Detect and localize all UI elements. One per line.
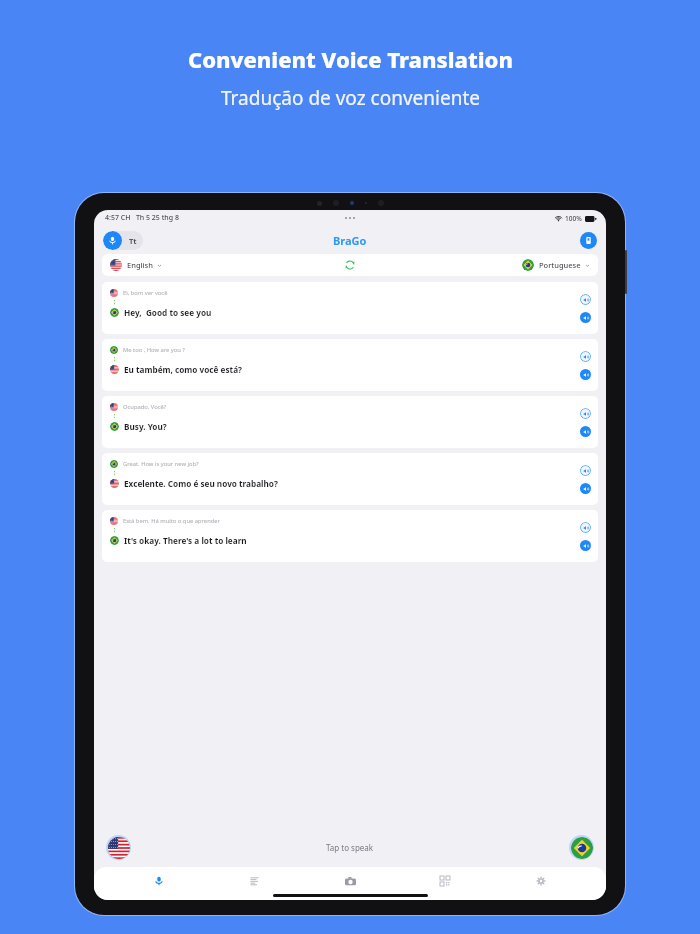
staticText: BraGo (333, 233, 367, 248)
button[interactable]: Speak Portuguese (569, 835, 594, 860)
staticText: Ei, bom ver você (123, 289, 168, 297)
button[interactable]: Swap languages (339, 254, 361, 276)
button[interactable]: Camera (320, 872, 380, 890)
staticText: Está bem. Há muito o que aprender (123, 517, 220, 525)
button[interactable]: Play translation (580, 369, 591, 380)
button[interactable]: Play source (580, 351, 591, 362)
staticText: English (127, 260, 153, 270)
staticText: Busy. You? (124, 421, 167, 432)
button[interactable]: Voice and text mode (103, 231, 143, 250)
staticText: Hey, Good to see you (124, 307, 212, 318)
staticText: Ocupado. Você? (123, 403, 167, 411)
button[interactable]: Speak English (106, 835, 131, 860)
staticText: Portuguese (539, 260, 581, 270)
button[interactable]: Text (225, 872, 285, 890)
button[interactable]: English (110, 254, 339, 276)
button[interactable]: Saved phrases (580, 232, 597, 249)
staticText: Excelente. Como é seu novo trabalho? (124, 478, 278, 489)
staticText: It's okay. There's a lot to learn (124, 535, 247, 546)
button[interactable]: Play translation (580, 483, 591, 494)
button[interactable]: Está bem. Há muito o que aprender (102, 510, 598, 562)
staticText: Convenient Voice Translation (188, 44, 513, 74)
staticText: Tap to speak (326, 842, 374, 853)
button[interactable]: Me too , How are you ? (102, 339, 598, 391)
staticText: Eu também, como você está? (124, 364, 242, 375)
button[interactable]: Play translation (580, 312, 591, 323)
button[interactable]: Play source (580, 408, 591, 419)
staticText: 100% (565, 214, 582, 223)
button[interactable]: Scan code (415, 872, 475, 890)
staticText: Tradução de voz conveniente (221, 85, 480, 111)
button[interactable]: Portuguese (361, 254, 590, 276)
button[interactable]: Ocupado. Você? (102, 396, 598, 448)
button[interactable]: Play source (580, 294, 591, 305)
staticText: 4:57 CH Th 5 25 thg 8 (105, 213, 179, 223)
button[interactable]: Play source (580, 465, 591, 476)
staticText: Me too , How are you ? (123, 346, 185, 354)
button[interactable]: Play translation (580, 540, 591, 551)
button[interactable]: Voice (129, 872, 189, 890)
button[interactable]: Great. How is your new job? (102, 453, 598, 505)
button[interactable]: Play source (580, 522, 591, 533)
button[interactable]: Play translation (580, 426, 591, 437)
staticText: Tt (129, 236, 137, 246)
button[interactable]: Settings (511, 872, 571, 890)
button[interactable]: Ei, bom ver você (102, 282, 598, 334)
staticText: Great. How is your new job? (123, 460, 199, 468)
